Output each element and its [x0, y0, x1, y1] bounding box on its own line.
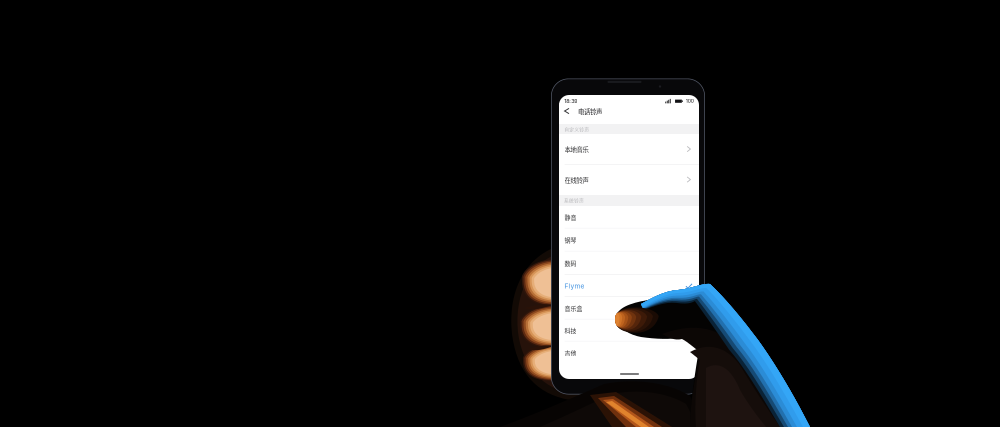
button[interactable]: 在线铃声 [559, 165, 699, 195]
staticText: 系统铃声 [564, 197, 584, 204]
staticText: 18:39 [564, 98, 577, 104]
staticText: 100 [686, 98, 694, 104]
button[interactable]: Back [559, 103, 574, 120]
staticText: 电话铃声 [578, 107, 602, 116]
staticText: 吉他 [564, 348, 576, 357]
staticText: 本地音乐 [565, 145, 589, 154]
staticText: 静音 [564, 213, 576, 222]
button[interactable]: 吉他 [559, 341, 699, 364]
button[interactable]: 音乐盒 [559, 297, 699, 319]
button[interactable]: 钢琴 [559, 228, 699, 251]
staticText: 钢琴 [564, 236, 576, 244]
staticText: 在线铃声 [565, 175, 589, 185]
staticText: Flyme [564, 282, 584, 290]
button[interactable]: 本地音乐 [559, 134, 699, 165]
button[interactable]: Flyme [559, 275, 699, 297]
button[interactable]: 科技 [559, 319, 699, 341]
staticText: 音乐盒 [564, 304, 582, 313]
button[interactable]: 静音 [559, 206, 699, 228]
staticText: 科技 [564, 326, 576, 335]
staticText: 数码 [564, 259, 576, 268]
button[interactable]: 数码 [559, 251, 699, 275]
staticText: 自定义铃声 [564, 126, 589, 133]
